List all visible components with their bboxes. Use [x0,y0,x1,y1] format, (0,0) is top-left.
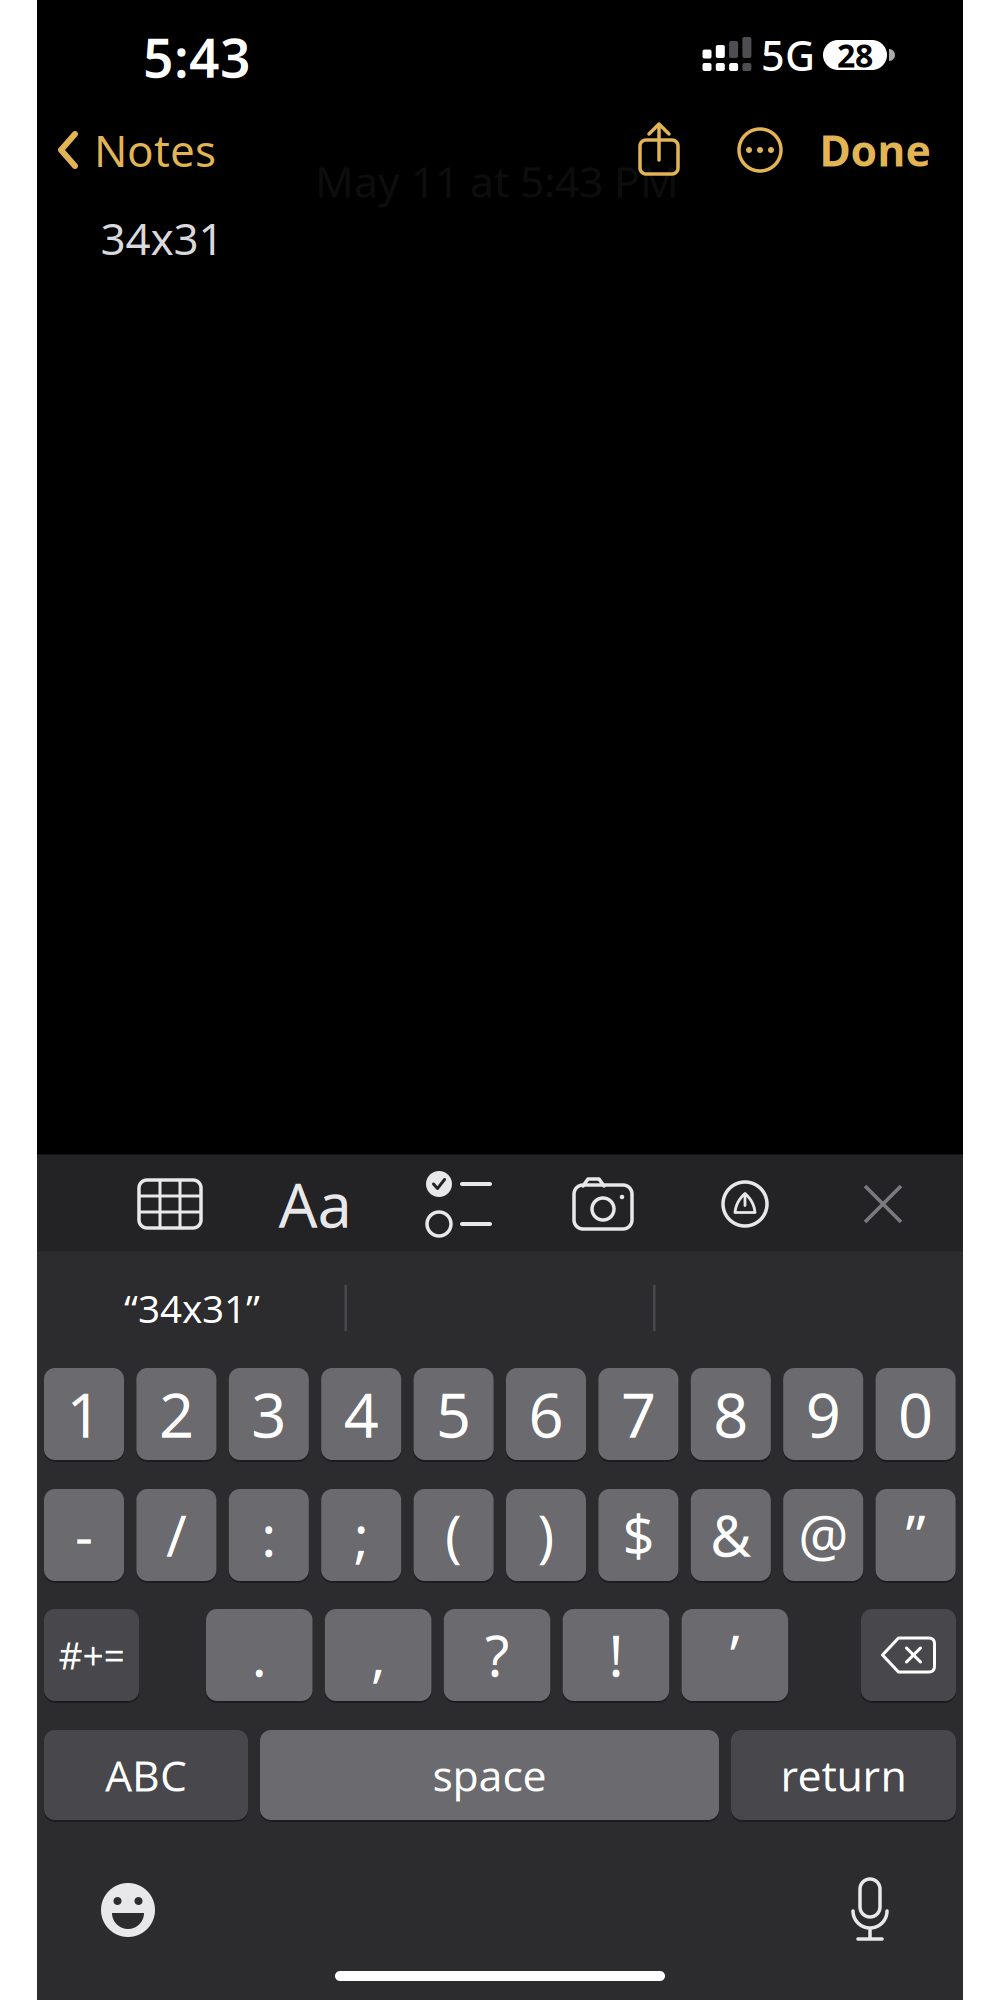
button[interactable]: #+= [44,1608,139,1702]
staticText: @ [798,1498,848,1572]
button[interactable]: Delete [861,1609,956,1701]
button[interactable]: 5 [414,1367,494,1461]
button[interactable]: $ [598,1488,678,1582]
button[interactable]: 2 [136,1367,216,1461]
button[interactable]: ABC [44,1729,248,1821]
button[interactable]: More [736,126,784,174]
button[interactable]: Done [819,122,930,178]
button[interactable]: . [206,1608,312,1702]
staticText: “34x31” [124,1282,260,1334]
staticText: ABC [105,1747,187,1803]
staticText: 4 [344,1373,379,1455]
staticText: Done [819,122,930,178]
staticText: - [75,1498,93,1572]
button[interactable]: Notes [58,121,216,179]
button[interactable]: 7 [598,1367,678,1461]
button[interactable]: return [731,1729,956,1821]
staticText: 5:43 [143,22,251,92]
button[interactable]: & [691,1488,771,1582]
button[interactable]: 6 [506,1367,586,1461]
staticText: $ [622,1498,654,1572]
button[interactable]: ’ [682,1608,788,1702]
button[interactable]: ) [506,1488,586,1582]
staticText: May 11 at 5:43 PM [315,153,679,209]
button[interactable]: Checklist [426,1171,492,1237]
button[interactable]: @ [783,1488,863,1582]
staticText: return [780,1747,906,1803]
staticText: / [166,1498,187,1572]
staticText: Aa [278,1163,351,1245]
button[interactable]: , [325,1608,431,1702]
staticText: : [261,1498,276,1572]
staticText: ? [485,1618,509,1692]
staticText: 3 [251,1373,286,1455]
staticText: 28 [837,34,873,76]
button[interactable]: 1 [44,1367,124,1461]
button[interactable]: ! [563,1608,669,1702]
button[interactable]: Format [278,1163,351,1245]
staticText: . [252,1618,267,1692]
staticText: 34x31 [100,209,223,267]
button[interactable]: ; [321,1488,401,1582]
staticText: #+= [58,1630,124,1680]
staticText: 7 [621,1373,656,1455]
staticText: ” [906,1498,926,1572]
staticText: 8 [713,1373,748,1455]
button[interactable]: 8 [691,1367,771,1461]
staticText: 9 [806,1373,841,1455]
button[interactable]: 0 [876,1367,956,1461]
staticText: 5 [436,1373,471,1455]
staticText: 6 [528,1373,563,1455]
button[interactable]: - [44,1488,124,1582]
button[interactable]: Dictation [848,1875,892,1947]
staticText: space [432,1747,546,1803]
button[interactable]: : [229,1488,309,1582]
staticText: 1 [66,1373,101,1455]
button[interactable]: Dismiss [865,1186,901,1222]
staticText: ! [608,1618,623,1692]
staticText: & [710,1498,751,1572]
staticText: ( [445,1498,462,1572]
button[interactable]: Emoji [99,1881,157,1939]
button[interactable]: space [260,1729,719,1821]
button[interactable]: Share [635,118,683,178]
staticText: Notes [94,121,216,179]
staticText: 0 [898,1373,933,1455]
button[interactable]: Markup [721,1180,769,1228]
staticText: ’ [730,1618,740,1692]
staticText: 5G [761,28,815,82]
staticText: ) [537,1498,554,1572]
button[interactable]: Insert table [137,1177,203,1231]
button[interactable]: ” [876,1488,956,1582]
staticText: 2 [159,1373,194,1455]
button[interactable]: ? [444,1608,550,1702]
button[interactable]: / [136,1488,216,1582]
button[interactable]: “34x31” [52,1268,332,1348]
button[interactable]: 9 [783,1367,863,1461]
button[interactable]: ( [414,1488,494,1582]
staticText: , [371,1618,386,1692]
staticText: ; [354,1498,369,1572]
button[interactable]: 3 [229,1367,309,1461]
button[interactable]: 4 [321,1367,401,1461]
button[interactable]: Insert photo [571,1177,635,1231]
